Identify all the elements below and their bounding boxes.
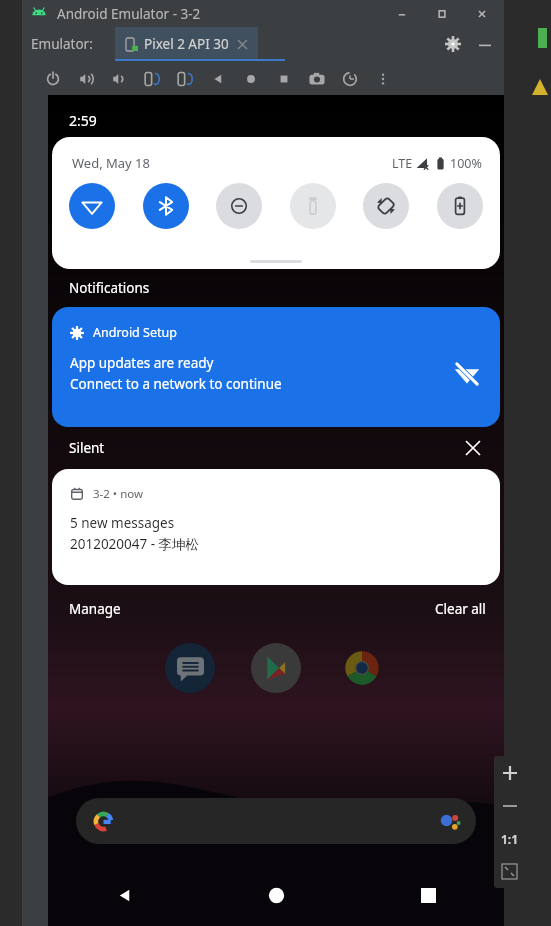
button[interactable]: Battery saver — [437, 183, 483, 229]
staticText: Wed, May 18 — [72, 154, 150, 172]
staticText: 1:1 — [501, 831, 519, 847]
staticText: Pixel 2 API 30 — [144, 35, 229, 53]
button[interactable]: 3-2 • now — [52, 469, 500, 585]
button[interactable]: Bluetooth — [143, 183, 189, 229]
button[interactable]: Wi-Fi — [69, 183, 115, 229]
button[interactable]: Minimize — [382, 1, 422, 27]
button[interactable]: Maximize — [422, 1, 462, 27]
staticText: Emulator: — [31, 35, 93, 53]
staticText: Silent — [69, 439, 105, 457]
button[interactable]: Clear silent — [460, 435, 486, 461]
button[interactable]: Back — [201, 62, 234, 95]
button[interactable]: Auto-rotate — [363, 183, 409, 229]
button[interactable]: Rotate right — [168, 62, 201, 95]
button[interactable]: Messages — [165, 643, 215, 693]
button[interactable]: Close tab — [237, 39, 248, 50]
button[interactable]: Android Setup — [52, 307, 500, 427]
button[interactable]: Power — [36, 62, 69, 95]
button[interactable]: Chrome — [337, 643, 387, 693]
button[interactable]: More — [366, 62, 399, 95]
button[interactable]: Actual size — [494, 822, 525, 855]
staticText: Clear all — [435, 600, 486, 618]
button[interactable]: Close — [462, 1, 502, 27]
button[interactable]: Volume down — [102, 62, 135, 95]
button[interactable]: Rotate left — [135, 62, 168, 95]
staticText: 2:59 — [69, 111, 97, 130]
staticText: 3-2 • now — [93, 486, 144, 502]
button[interactable]: Flashlight — [290, 183, 336, 229]
button[interactable]: Back — [48, 872, 200, 918]
button[interactable]: Rotate — [333, 62, 366, 95]
staticText: Connect to a network to continue — [70, 375, 282, 393]
button[interactable]: Clear all — [435, 600, 486, 618]
button[interactable]: Search — [76, 798, 476, 844]
button[interactable]: Zoom out — [494, 789, 525, 822]
staticText: 2012020047 - 李坤松 — [70, 535, 200, 553]
button[interactable]: Overview — [267, 62, 300, 95]
button[interactable]: Screenshot — [300, 62, 333, 95]
staticText: Notifications — [69, 279, 150, 297]
button[interactable]: Recents — [352, 872, 504, 918]
button[interactable]: Settings — [436, 27, 470, 61]
button[interactable]: Volume up — [69, 62, 102, 95]
button[interactable]: Fit to screen — [494, 855, 525, 888]
staticText: LTE — [392, 155, 413, 172]
staticText: Android Setup — [93, 324, 177, 341]
staticText: 5 new messages — [70, 514, 175, 532]
button[interactable]: Do not disturb — [216, 183, 262, 229]
staticText: App updates are ready — [70, 354, 214, 372]
button[interactable]: Hide — [470, 29, 500, 59]
button[interactable]: Manage — [69, 600, 121, 618]
button[interactable]: Pixel 2 API 30 — [125, 27, 248, 61]
staticText: 100% — [450, 155, 482, 172]
button[interactable]: Home — [234, 62, 267, 95]
staticText: Manage — [69, 600, 121, 618]
staticText: Android Emulator - 3-2 — [57, 5, 201, 23]
button[interactable]: Play Store — [251, 643, 301, 693]
button[interactable]: Home — [200, 872, 352, 918]
button[interactable]: Zoom in — [494, 756, 525, 789]
